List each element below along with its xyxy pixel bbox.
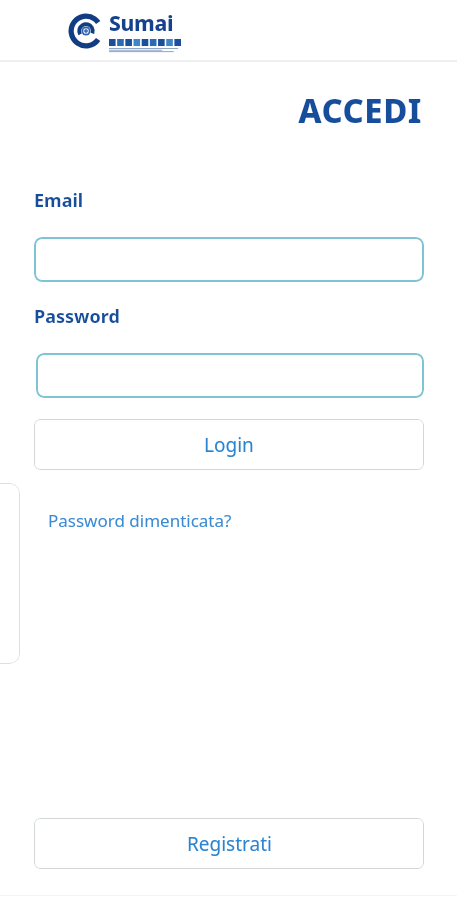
button[interactable] — [34, 237, 424, 282]
staticText: Password dimenticata? — [48, 509, 232, 532]
button[interactable] — [36, 353, 424, 398]
staticText: Login — [204, 432, 254, 458]
button[interactable]: Login — [34, 419, 424, 470]
staticText: Password — [34, 304, 120, 329]
button[interactable]: Password dimenticata? — [40, 503, 240, 538]
staticText: ACCEDI — [298, 88, 422, 133]
button[interactable]: Registrati — [34, 818, 424, 869]
staticText: Registrati — [187, 831, 272, 857]
staticText: Email — [34, 188, 84, 213]
staticText: Sumai — [109, 9, 174, 38]
other: Sumai logo — [65, 9, 191, 53]
